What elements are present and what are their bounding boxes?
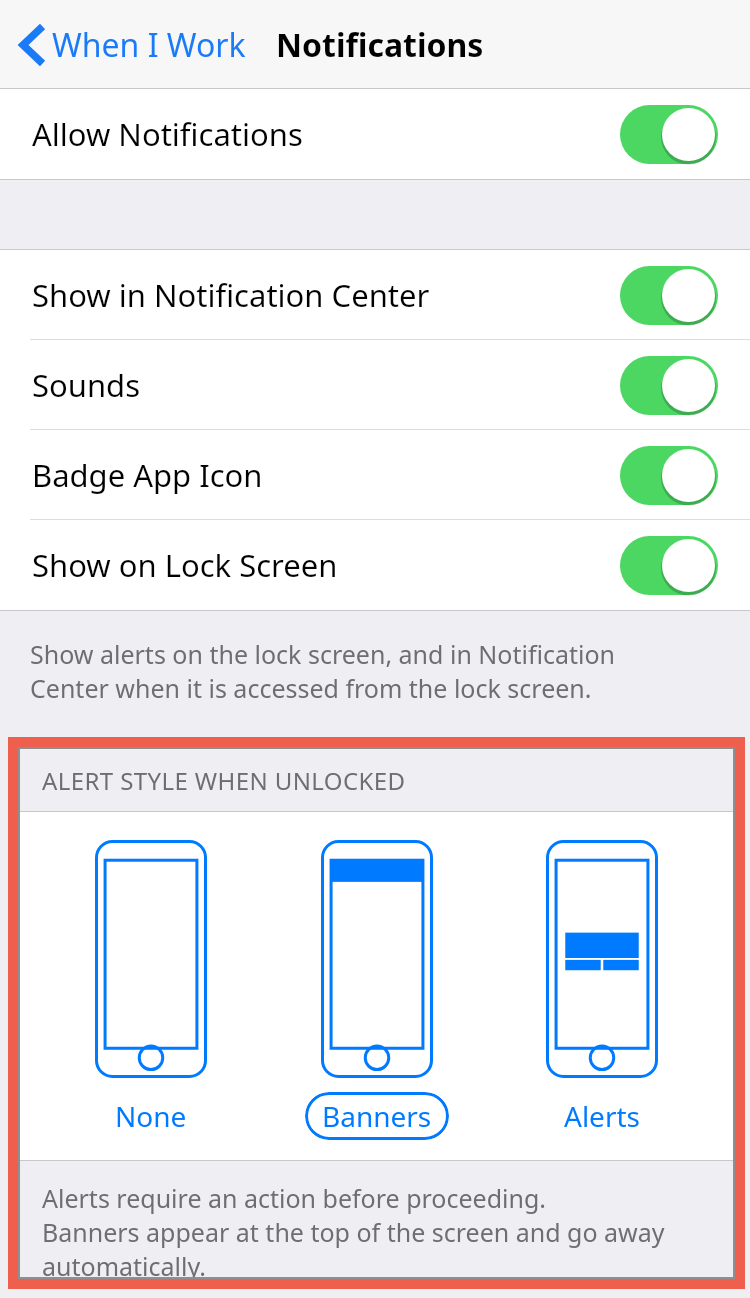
staticText: None (115, 1097, 187, 1135)
staticText: When I Work (52, 23, 246, 67)
staticText: Show alerts on the lock screen, and in N… (30, 637, 616, 671)
button[interactable]: Show in Notification Center toggle (620, 266, 718, 325)
staticText: Show on Lock Screen (32, 544, 338, 586)
button[interactable]: Alerts (507, 812, 697, 1140)
other: Back (18, 25, 46, 65)
button[interactable]: Sounds toggle (620, 356, 718, 415)
staticText: Show in Notification Center (32, 274, 430, 316)
button[interactable]: Back (18, 23, 254, 67)
button[interactable]: Badge App Icon toggle (620, 446, 718, 505)
staticText: Notifications (276, 23, 484, 67)
staticText: Sounds (32, 364, 141, 406)
staticText: Badge App Icon (32, 454, 263, 496)
staticText: Banners appear at the top of the screen … (42, 1215, 665, 1249)
staticText: Allow Notifications (32, 113, 303, 155)
button[interactable]: Allow Notifications toggle (620, 105, 718, 164)
staticText: Alerts require an action before proceedi… (42, 1181, 547, 1215)
staticText: automatically. (42, 1249, 206, 1277)
staticText: Alerts (564, 1097, 640, 1135)
staticText: Banners (322, 1097, 432, 1135)
button[interactable]: Banners (282, 812, 472, 1140)
button[interactable]: None (56, 812, 246, 1140)
staticText: Center when it is accessed from the lock… (30, 671, 592, 705)
staticText: ALERT STYLE WHEN UNLOCKED (42, 764, 406, 797)
button[interactable]: Show on Lock Screen toggle (620, 536, 718, 595)
